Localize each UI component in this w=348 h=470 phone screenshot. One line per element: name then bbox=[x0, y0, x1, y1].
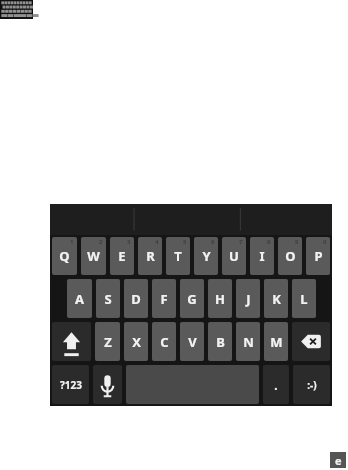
staticText: X bbox=[132, 333, 141, 351]
staticText: R bbox=[146, 247, 155, 265]
staticText: 5 bbox=[183, 238, 187, 246]
staticText: W bbox=[87, 247, 100, 265]
button[interactable]: Z bbox=[95, 322, 120, 361]
button[interactable]: R bbox=[138, 237, 162, 275]
staticText: 9 bbox=[295, 238, 299, 246]
staticText: E bbox=[118, 247, 126, 265]
button[interactable]: N bbox=[236, 322, 260, 361]
staticText: F bbox=[160, 290, 168, 308]
button[interactable]: H bbox=[208, 279, 232, 318]
staticText: B bbox=[216, 333, 225, 351]
staticText: U bbox=[229, 247, 239, 265]
button[interactable]: G bbox=[180, 279, 204, 318]
staticText: 4 bbox=[155, 238, 159, 246]
staticText: H bbox=[215, 290, 225, 308]
button[interactable]: Q bbox=[52, 237, 77, 275]
staticText: N bbox=[243, 333, 254, 351]
button[interactable]: O bbox=[278, 237, 302, 275]
staticText: 7 bbox=[239, 238, 243, 246]
staticText: 1 bbox=[70, 238, 74, 246]
staticText: Y bbox=[202, 247, 211, 265]
staticText: K bbox=[272, 290, 281, 308]
staticText: 3 bbox=[127, 238, 131, 246]
button[interactable]: I bbox=[250, 237, 274, 275]
staticText: L bbox=[300, 290, 308, 308]
button[interactable]: Voice input bbox=[93, 365, 122, 404]
button[interactable]: Y bbox=[194, 237, 218, 275]
staticText: C bbox=[160, 333, 169, 351]
staticText: 6 bbox=[211, 238, 215, 246]
button[interactable]: T bbox=[166, 237, 190, 275]
staticText: I bbox=[259, 247, 265, 265]
staticText: T bbox=[174, 247, 182, 265]
button[interactable]: W bbox=[81, 237, 106, 275]
button[interactable]: P bbox=[306, 237, 330, 275]
button[interactable]: :-) bbox=[293, 365, 330, 404]
staticText: 0 bbox=[323, 238, 327, 246]
button[interactable]: F bbox=[152, 279, 176, 318]
staticText: Z bbox=[104, 333, 112, 351]
staticText: O bbox=[285, 247, 296, 265]
button[interactable]: C bbox=[152, 322, 176, 361]
staticText: 2 bbox=[99, 238, 103, 246]
staticText: :-) bbox=[307, 378, 317, 392]
button[interactable]: Delete bbox=[292, 322, 330, 361]
staticText: P bbox=[314, 247, 323, 265]
button[interactable]: . bbox=[263, 365, 289, 404]
staticText: A bbox=[75, 290, 84, 308]
button[interactable]: B bbox=[208, 322, 232, 361]
staticText: D bbox=[131, 290, 141, 308]
button[interactable]: L bbox=[292, 279, 316, 318]
staticText: e bbox=[335, 453, 342, 468]
staticText: J bbox=[246, 290, 251, 308]
button[interactable]: J bbox=[236, 279, 260, 318]
button[interactable] bbox=[0, 0, 33, 19]
button[interactable]: D bbox=[124, 279, 148, 318]
button[interactable]: E bbox=[110, 237, 134, 275]
button[interactable]: U bbox=[222, 237, 246, 275]
button[interactable]: Shift bbox=[52, 322, 91, 361]
button[interactable]: S bbox=[96, 279, 120, 318]
staticText: G bbox=[187, 290, 197, 308]
button[interactable]: X bbox=[124, 322, 148, 361]
staticText: . bbox=[274, 377, 278, 393]
staticText: ?123 bbox=[60, 378, 82, 392]
staticText: V bbox=[188, 333, 197, 351]
button[interactable]: ?123 bbox=[52, 365, 89, 404]
button[interactable]: V bbox=[180, 322, 204, 361]
staticText: 8 bbox=[267, 238, 271, 246]
button[interactable]: K bbox=[264, 279, 288, 318]
button[interactable]: A bbox=[67, 279, 92, 318]
staticText: Q bbox=[59, 247, 70, 265]
staticText: M bbox=[270, 333, 283, 351]
button[interactable]: M bbox=[264, 322, 288, 361]
staticText: S bbox=[104, 290, 112, 308]
button[interactable]: Editor bbox=[330, 452, 346, 468]
